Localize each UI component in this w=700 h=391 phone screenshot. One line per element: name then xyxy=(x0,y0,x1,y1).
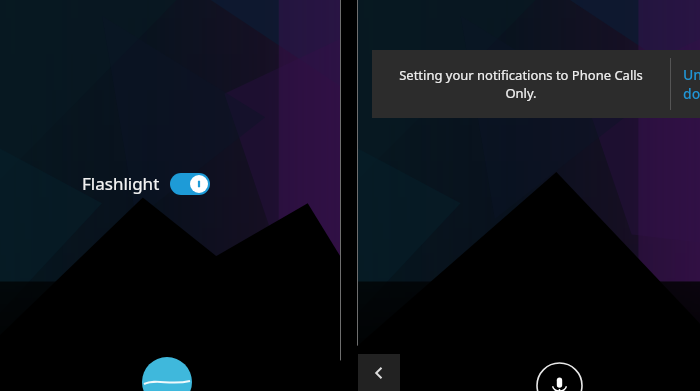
button[interactable]: Setting your notifications to Phone Call… xyxy=(372,50,670,118)
button[interactable]: Flashlight xyxy=(80,168,212,199)
button[interactable]: Home xyxy=(142,357,192,391)
staticText: Undo xyxy=(683,65,700,103)
button[interactable]: Voice search xyxy=(536,362,583,391)
staticText: Flashlight xyxy=(82,172,160,195)
button[interactable]: Undo xyxy=(671,50,700,118)
staticText: Setting your notifications to Phone Call… xyxy=(386,66,656,102)
button[interactable]: Back xyxy=(358,354,400,391)
